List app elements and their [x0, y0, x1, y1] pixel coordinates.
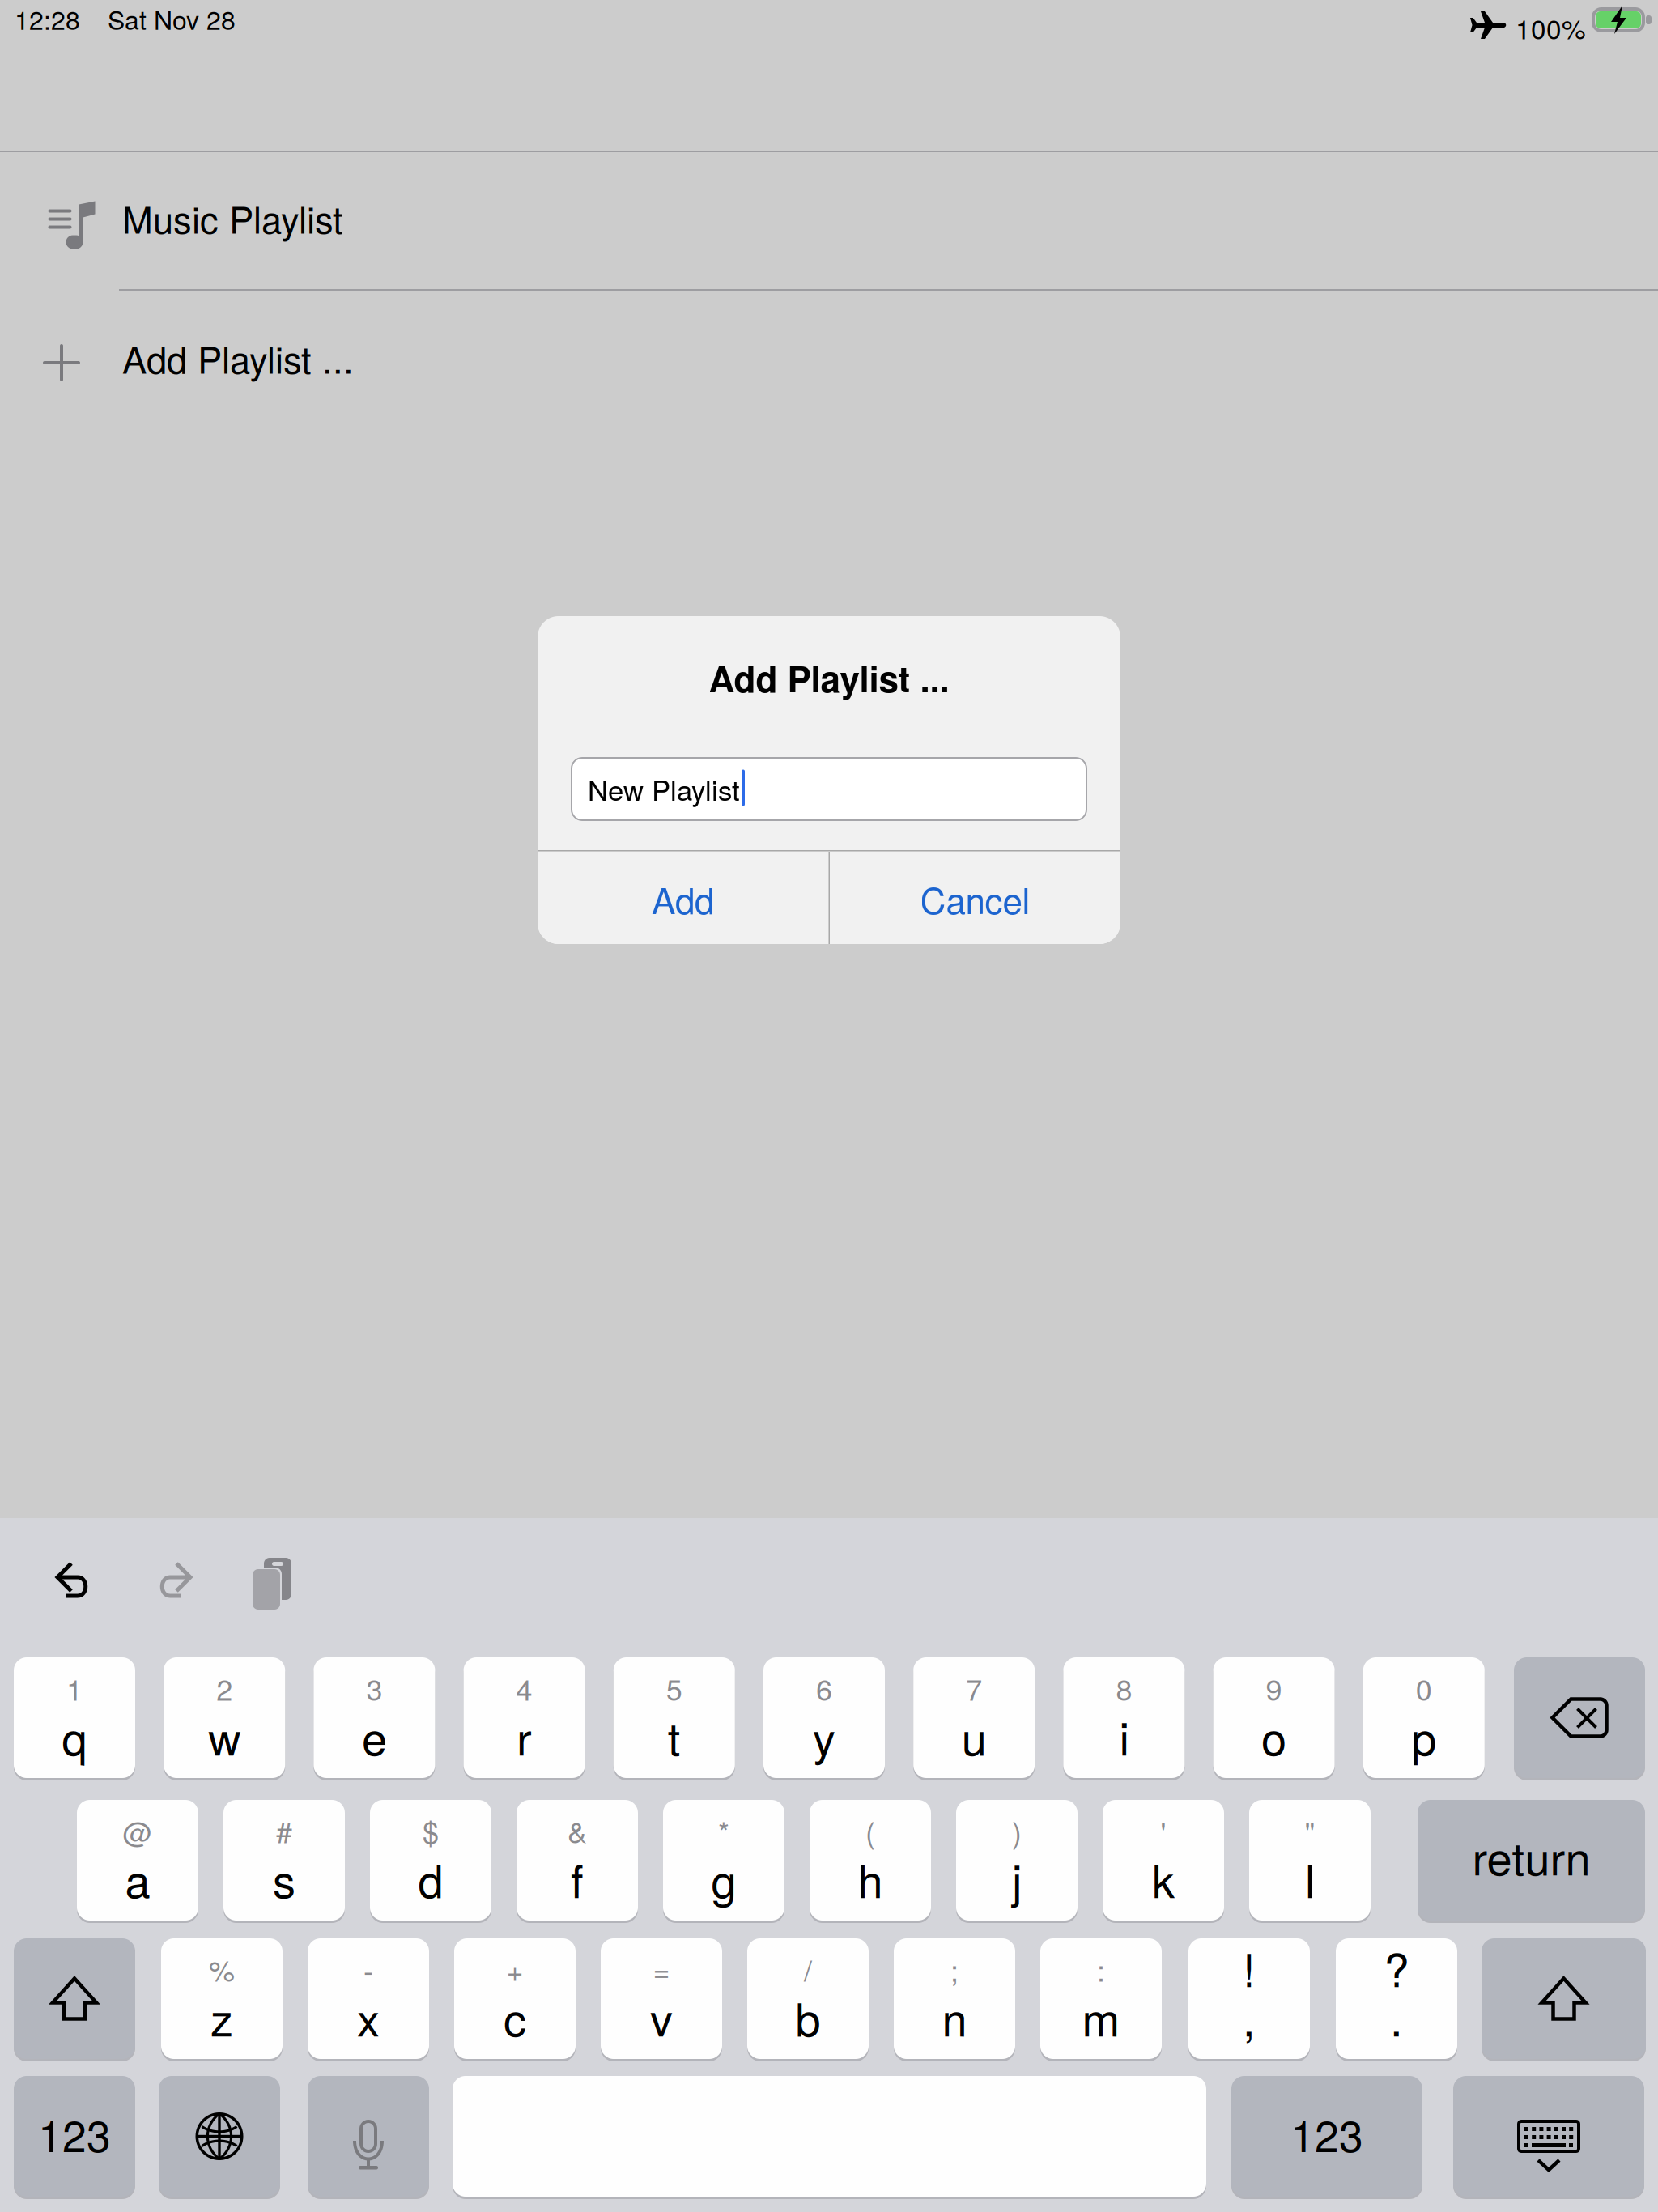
button[interactable]: Next keyboard [159, 2076, 280, 2197]
button[interactable]: - [308, 1938, 429, 2059]
button[interactable]: Delete [1514, 1657, 1645, 1778]
button[interactable]: ! [1188, 1938, 1310, 2059]
button[interactable]: ( [810, 1800, 931, 1921]
staticText: m [1082, 1984, 1120, 2049]
staticText: 1 [66, 1667, 83, 1709]
staticText: 6 [816, 1667, 832, 1709]
button[interactable]: / [747, 1938, 869, 2059]
staticText: 123 [38, 2103, 111, 2164]
staticText: l [1305, 1846, 1315, 1911]
button[interactable]: ' [1103, 1800, 1224, 1921]
staticText: v [650, 1984, 673, 2049]
button[interactable]: Hide keyboard [1453, 2076, 1644, 2197]
button[interactable]: Dictation [308, 2076, 429, 2197]
staticText: q [62, 1703, 87, 1768]
staticText: r [517, 1703, 532, 1768]
staticText: ( [865, 1810, 875, 1852]
staticText: / [804, 1948, 812, 1990]
staticText: 5 [666, 1667, 682, 1709]
staticText: j [1012, 1846, 1022, 1911]
button[interactable]: 4 [464, 1657, 585, 1778]
button[interactable]: 123 [1231, 2076, 1422, 2197]
staticText: ) [1012, 1810, 1022, 1852]
staticText: ! [1243, 1935, 1256, 2000]
staticText: ' [1161, 1810, 1166, 1852]
staticText: 4 [516, 1667, 532, 1709]
button[interactable]: Cancel [830, 852, 1120, 944]
staticText: f [571, 1846, 584, 1911]
staticText: - [363, 1948, 373, 1990]
staticText: # [276, 1810, 292, 1852]
button[interactable]: 3 [314, 1657, 435, 1778]
button[interactable]: $ [370, 1800, 491, 1921]
staticText: Cancel [920, 873, 1030, 924]
staticText: $ [423, 1810, 439, 1852]
button[interactable]: 2 [164, 1657, 285, 1778]
staticText: t [668, 1703, 681, 1768]
button[interactable]: 123 [14, 2076, 135, 2197]
staticText: n [942, 1984, 967, 2049]
staticText: % [209, 1948, 235, 1990]
button[interactable]: % [161, 1938, 283, 2059]
staticText: u [962, 1703, 987, 1768]
staticText: p [1411, 1703, 1436, 1768]
button[interactable]: 0 [1363, 1657, 1485, 1778]
staticText: , [1243, 1984, 1256, 2049]
staticText: h [858, 1846, 883, 1911]
button[interactable]: Add Playlist ... [0, 291, 1658, 428]
button[interactable]: return [1418, 1800, 1645, 1921]
button[interactable]: Redo [154, 1561, 193, 1598]
button[interactable]: Undo [55, 1561, 94, 1598]
button[interactable]: + [454, 1938, 576, 2059]
button[interactable]: 1 [14, 1657, 135, 1778]
staticText: 8 [1116, 1667, 1132, 1709]
staticText: b [795, 1984, 820, 2049]
staticText: o [1261, 1703, 1286, 1768]
staticText: Music Playlist [122, 191, 343, 244]
staticText: Add [652, 873, 714, 924]
button[interactable]: Add [538, 852, 828, 944]
staticText: + [506, 1948, 523, 1990]
button[interactable]: 8 [1063, 1657, 1185, 1778]
button[interactable]: 5 [613, 1657, 735, 1778]
staticText: . [1390, 1984, 1403, 2049]
staticText: s [273, 1846, 295, 1911]
staticText: " [1305, 1810, 1315, 1852]
button[interactable]: * [663, 1800, 784, 1921]
staticText: 2 [216, 1667, 233, 1709]
button[interactable]: Shift [1482, 1938, 1646, 2059]
button[interactable]: @ [77, 1800, 198, 1921]
staticText: x [357, 1984, 380, 2049]
staticText: Add Playlist ... [122, 332, 354, 384]
button[interactable]: " [1249, 1800, 1371, 1921]
staticText: ; [950, 1948, 959, 1990]
staticText: y [813, 1703, 835, 1768]
button[interactable]: : [1040, 1938, 1162, 2059]
staticText: New Playlist [588, 769, 740, 809]
button[interactable]: 6 [763, 1657, 885, 1778]
staticText: = [653, 1948, 670, 1990]
staticText: 123 [1290, 2103, 1363, 2164]
staticText: * [718, 1810, 729, 1852]
button[interactable]: Music Playlist [0, 152, 1658, 290]
button[interactable]: & [517, 1800, 638, 1921]
staticText: c [504, 1984, 526, 2049]
staticText: 3 [366, 1667, 382, 1709]
staticText: e [362, 1703, 387, 1768]
button[interactable]: = [601, 1938, 722, 2059]
button[interactable]: 9 [1213, 1657, 1335, 1778]
staticText: Sat Nov 28 [108, 0, 236, 37]
button[interactable]: ) [956, 1800, 1078, 1921]
staticText: Add Playlist ... [709, 652, 949, 703]
staticText: g [711, 1846, 736, 1911]
button[interactable]: Paste [249, 1554, 287, 1606]
staticText: a [125, 1846, 150, 1911]
button[interactable]: ; [894, 1938, 1015, 2059]
button[interactable]: # [223, 1800, 345, 1921]
button[interactable]: 7 [913, 1657, 1035, 1778]
staticText: ? [1384, 1935, 1409, 2000]
button[interactable]: Shift [14, 1938, 135, 2059]
staticText: 100% [1516, 8, 1586, 47]
button[interactable]: ? [1336, 1938, 1457, 2059]
